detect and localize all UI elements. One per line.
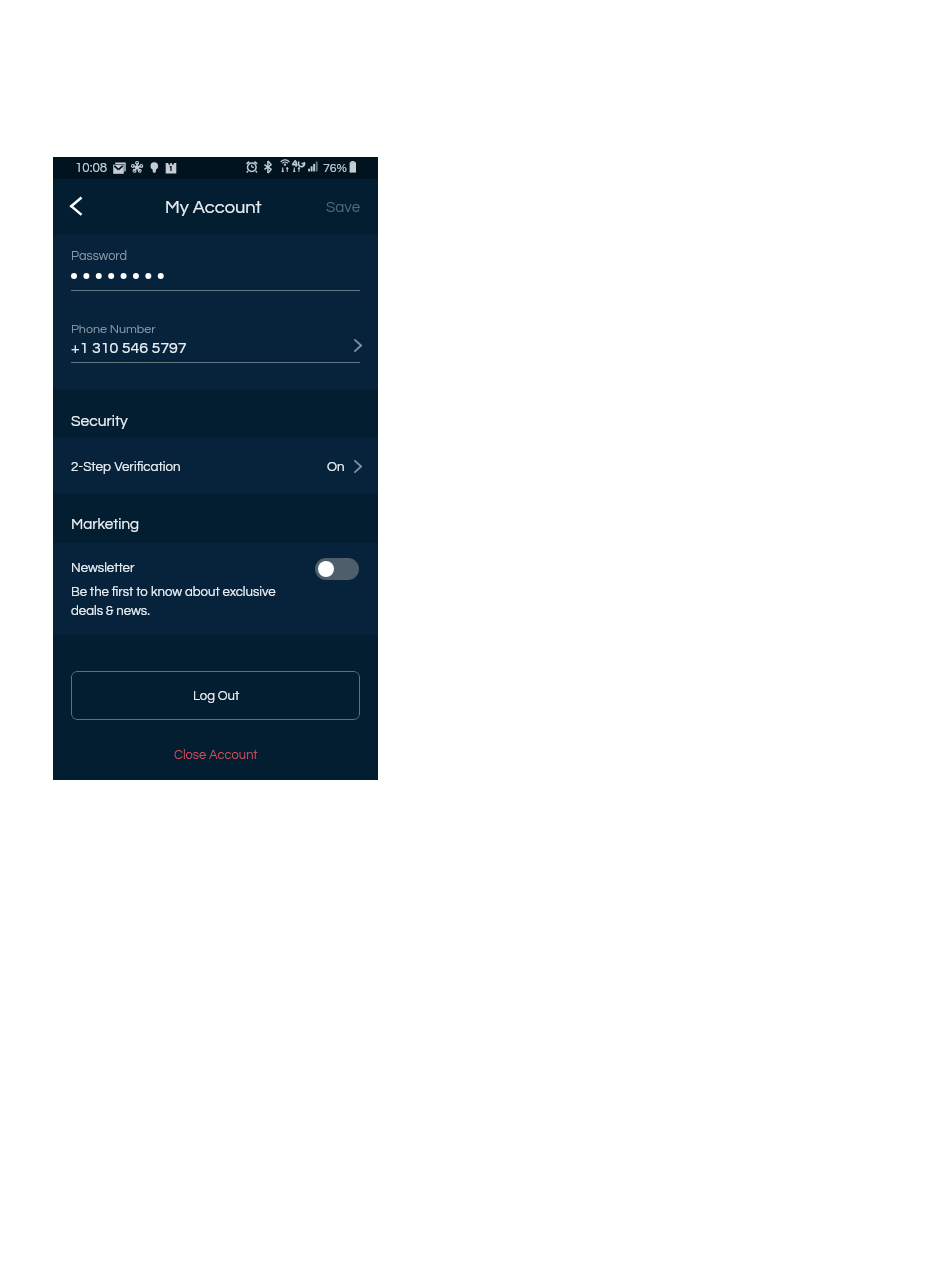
staticText: Security: [71, 413, 128, 429]
button[interactable]: Newsletter toggle: [315, 558, 359, 580]
staticText: 76%: [323, 162, 347, 175]
staticText: Newsletter: [71, 561, 135, 575]
staticText: Log Out: [193, 689, 240, 702]
staticText: On: [327, 460, 345, 474]
button[interactable]: [71, 671, 360, 720]
staticText: Save: [326, 200, 361, 216]
staticText: Be the first to know about exclusive dea…: [71, 585, 276, 617]
button[interactable]: Edit phone number: [347, 329, 373, 357]
staticText: 10:08: [75, 161, 108, 175]
button[interactable]: [165, 737, 265, 767]
staticText: 2-Step Verification: [71, 460, 181, 474]
button[interactable]: Back: [54, 185, 96, 227]
staticText: My Account: [165, 198, 262, 217]
button[interactable]: [53, 439, 378, 494]
button[interactable]: [317, 186, 369, 226]
staticText: Phone Number: [71, 323, 156, 336]
staticText: Close Account: [174, 748, 258, 761]
staticText: +1 310 546 5797: [71, 340, 187, 356]
staticText: Marketing: [71, 517, 140, 533]
staticText: Password: [71, 250, 128, 263]
